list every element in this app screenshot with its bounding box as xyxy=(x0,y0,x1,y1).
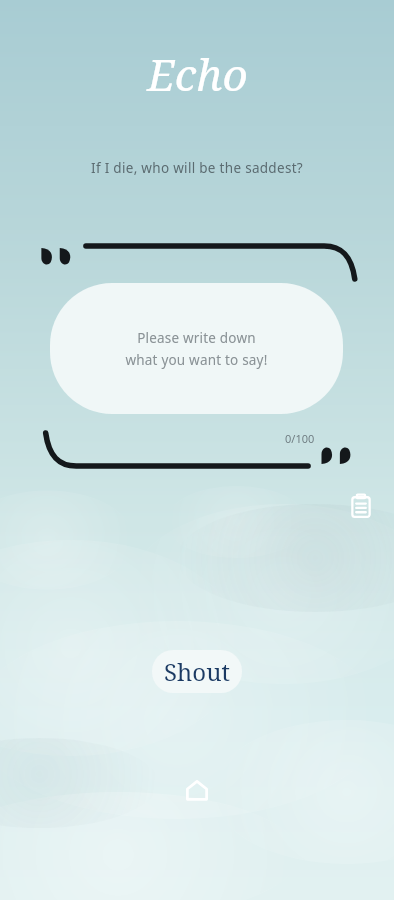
button[interactable]: Shout xyxy=(152,650,242,693)
staticText: Shout xyxy=(164,655,230,688)
staticText: 0/100 xyxy=(285,431,315,446)
button[interactable]: Home xyxy=(175,768,219,812)
staticText: Echo xyxy=(147,44,248,104)
button[interactable]: Saved messages xyxy=(342,487,380,525)
button[interactable]: Please write down what you want to say! xyxy=(50,283,343,414)
staticText: If I die, who will be the saddest? xyxy=(24,159,370,177)
staticText: Please write down what you want to say! xyxy=(125,329,268,369)
